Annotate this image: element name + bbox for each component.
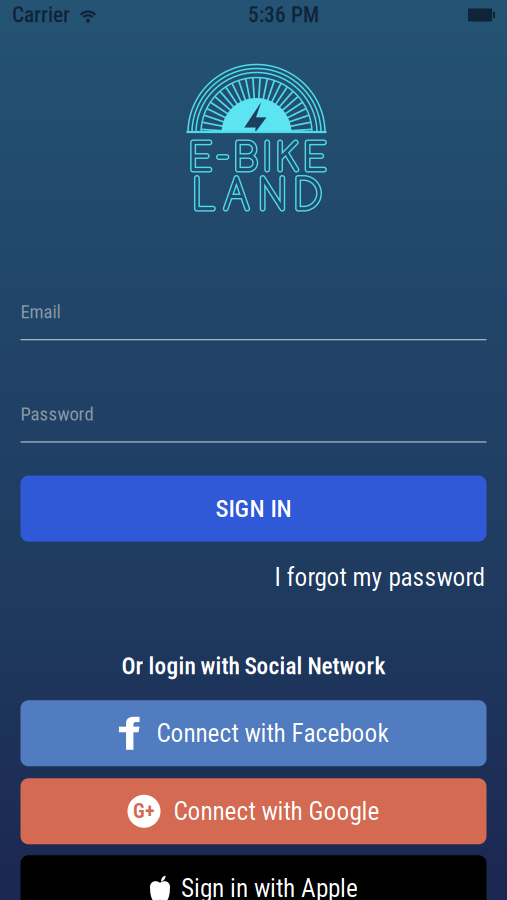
- staticText: Carrier: [12, 2, 70, 27]
- staticText: I forgot my password: [274, 563, 485, 592]
- staticText: Sign in with Apple: [181, 873, 358, 900]
- button[interactable]: SIGN IN: [20, 476, 486, 542]
- staticText: Password: [20, 403, 93, 425]
- button[interactable]: Connect with Facebook: [20, 700, 486, 766]
- button[interactable]: G+: [20, 778, 486, 844]
- staticText: Or login with Social Network: [121, 653, 385, 680]
- staticText: Connect with Google: [173, 796, 379, 826]
- staticText: Connect with Facebook: [156, 718, 388, 748]
- staticText: G+: [133, 800, 155, 823]
- staticText: SIGN IN: [215, 494, 291, 523]
- staticText: 5:36 PM: [248, 2, 319, 27]
- staticText: Email: [20, 301, 60, 323]
- button[interactable]: I forgot my password: [274, 563, 485, 592]
- button[interactable]: Sign in with Apple: [20, 855, 486, 900]
